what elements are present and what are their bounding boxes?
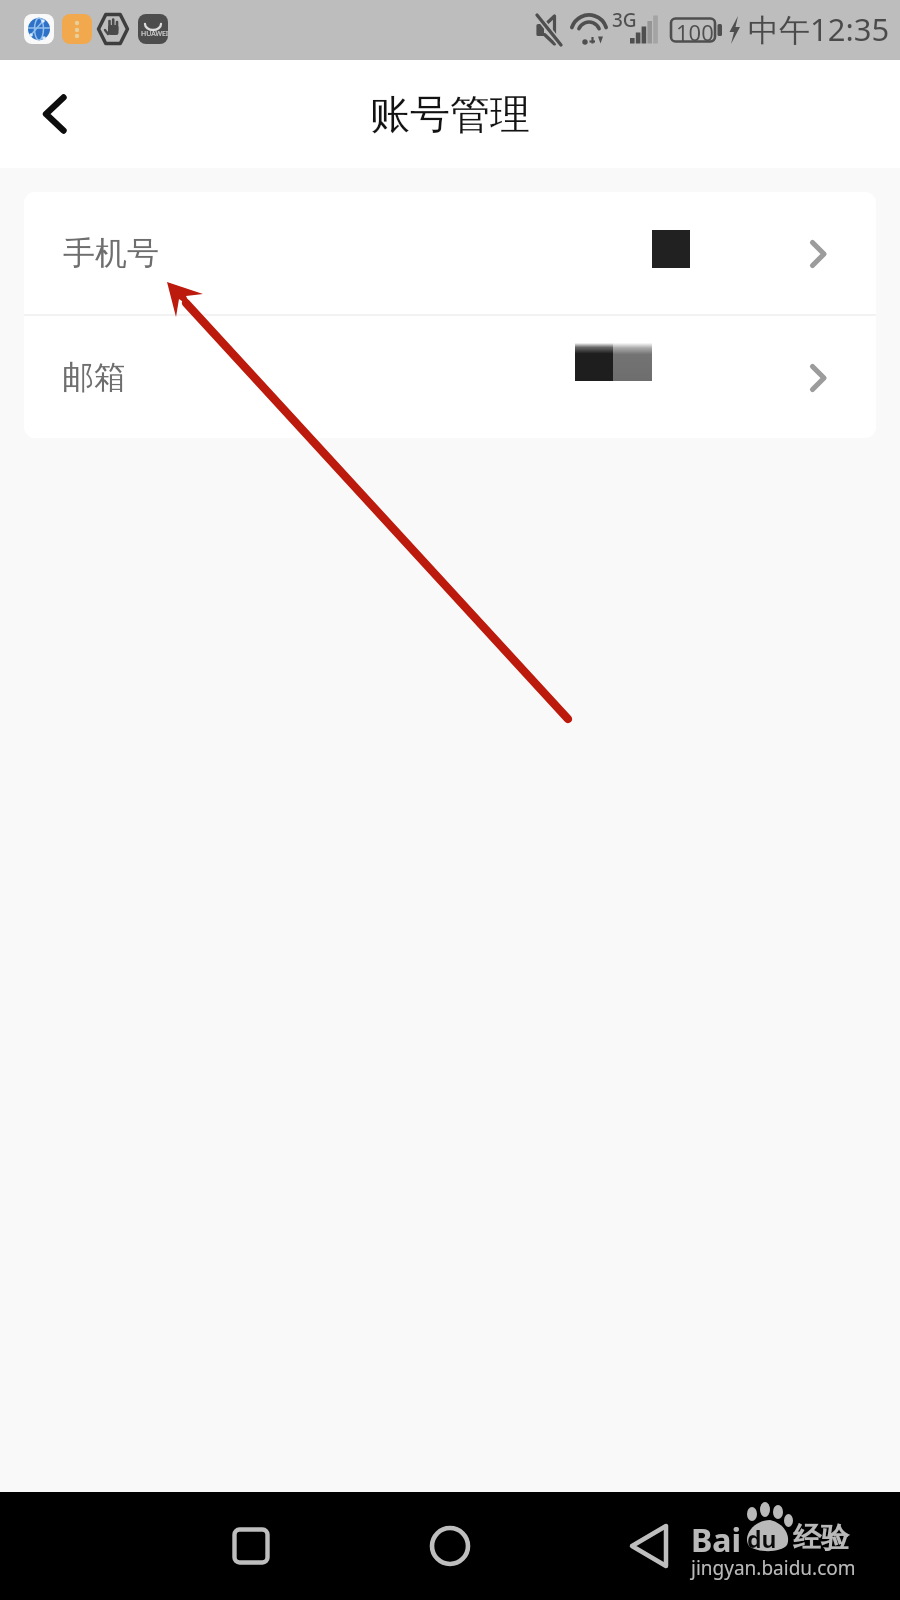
staticText: Bai — [691, 1518, 742, 1562]
staticText: 100 — [676, 17, 714, 47]
staticText: 3G — [612, 7, 637, 33]
button[interactable]: Back — [14, 74, 94, 154]
staticText: HUAWEI — [141, 29, 169, 39]
staticText: 经验 — [793, 1520, 849, 1555]
button[interactable]: 手机号 — [24, 192, 876, 314]
staticText: 手机号 — [63, 233, 159, 273]
staticText: 账号管理 — [370, 89, 530, 139]
button[interactable]: Back — [610, 1506, 690, 1586]
staticText: 中午12:35 — [748, 8, 890, 50]
button[interactable]: Home — [410, 1506, 490, 1586]
button[interactable]: Recent apps — [211, 1506, 291, 1586]
staticText: jingyan.baidu.com — [691, 1555, 856, 1581]
staticText: du — [747, 1523, 777, 1554]
staticText: 邮箱 — [62, 357, 126, 397]
button[interactable]: 邮箱 — [24, 316, 876, 438]
